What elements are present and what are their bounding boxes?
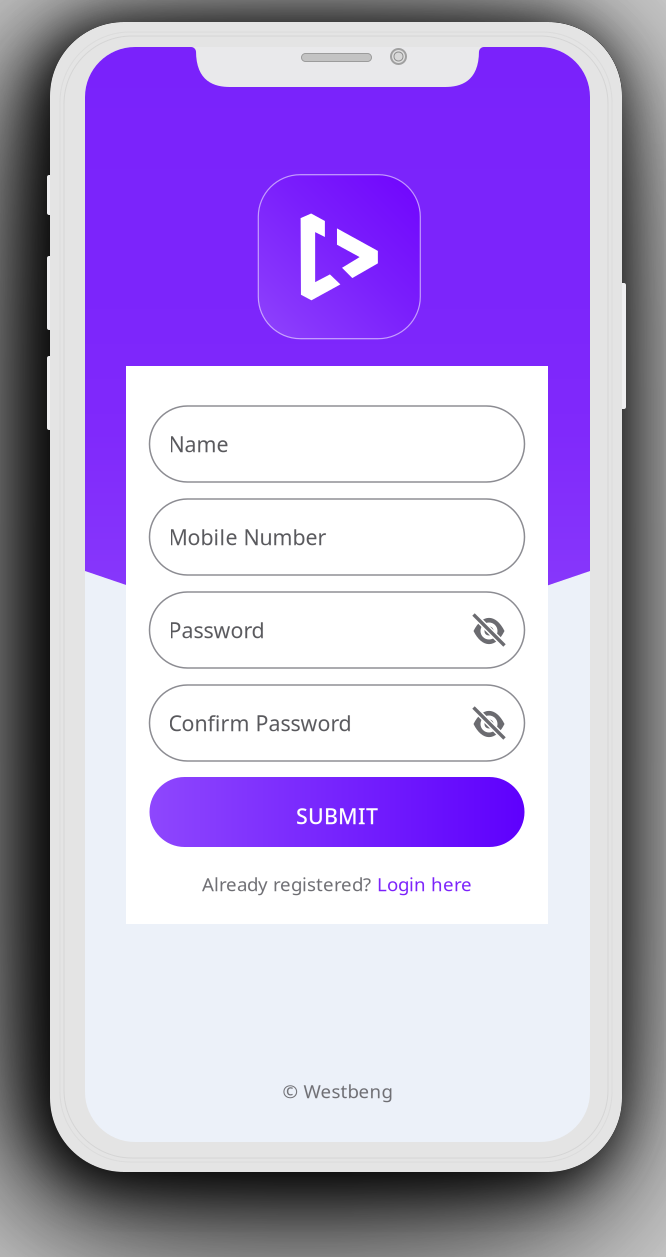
staticText: Name — [168, 430, 228, 458]
button[interactable]: SUBMIT — [149, 777, 524, 847]
staticText: Password — [168, 616, 264, 644]
button[interactable]: Mobile Number — [149, 499, 524, 575]
button[interactable]: Already registered? — [149, 873, 524, 895]
staticText: Already registered? — [202, 872, 371, 896]
button[interactable]: Name — [149, 406, 524, 482]
button[interactable]: Confirm Password — [149, 685, 524, 761]
staticText: Confirm Password — [168, 709, 351, 737]
staticText: SUBMIT — [296, 802, 378, 830]
staticText: Mobile Number — [168, 523, 326, 551]
staticText: Login here — [377, 872, 472, 896]
button[interactable]: Password — [149, 592, 524, 668]
staticText: © Westbeng — [282, 1079, 392, 1103]
